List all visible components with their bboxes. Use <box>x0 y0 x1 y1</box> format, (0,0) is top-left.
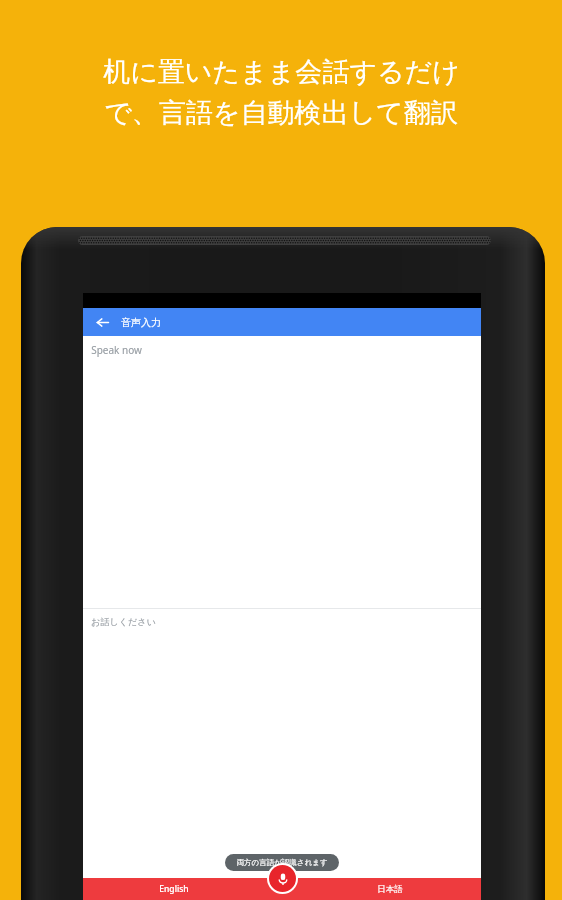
staticText: 日本語 <box>377 884 403 895</box>
staticText: English <box>159 883 189 895</box>
staticText: 音声入力 <box>121 316 161 329</box>
staticText: Speak now <box>91 343 142 357</box>
staticText: 両方の言語が認識されます <box>236 858 328 867</box>
button[interactable]: 日本語 <box>299 878 481 900</box>
button[interactable]: English <box>83 878 265 900</box>
staticText: お話しください <box>91 616 156 627</box>
button[interactable]: Back <box>92 312 112 332</box>
staticText: 机に置いたまま会話するだけ <box>103 55 460 89</box>
button[interactable]: Microphone <box>269 865 296 892</box>
staticText: で、言語を自動検出して翻訳 <box>104 96 458 130</box>
